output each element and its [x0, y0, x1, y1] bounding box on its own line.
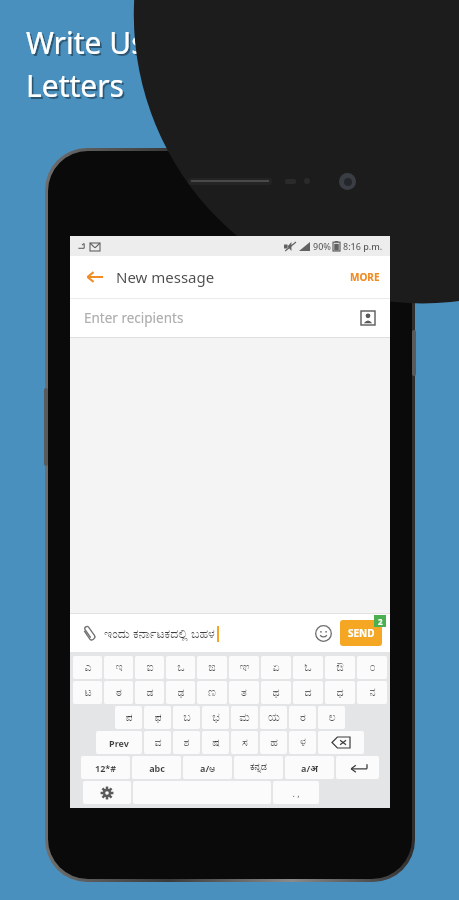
- button[interactable]: ಮ: [231, 706, 258, 729]
- staticText: ಬ: [183, 712, 191, 723]
- button[interactable]: ಣ: [197, 681, 227, 704]
- staticText: ಔ: [336, 662, 344, 673]
- staticText: . ,: [292, 787, 300, 799]
- button[interactable]: . ,: [273, 781, 319, 804]
- button[interactable]: 12*#: [81, 756, 130, 779]
- staticText: ರ: [300, 712, 306, 723]
- staticText: ಒ: [177, 662, 185, 673]
- button[interactable]: ಕನ್ನಡ: [234, 756, 283, 779]
- staticText: Write Using Kannada: [26, 22, 323, 63]
- staticText: a/अ: [301, 762, 318, 774]
- button[interactable]: ಒ: [166, 656, 195, 679]
- button[interactable]: ಇ: [104, 656, 133, 679]
- staticText: ಳ: [300, 737, 306, 748]
- button[interactable]: a/अ: [285, 756, 334, 779]
- button[interactable]: ಥ: [261, 681, 291, 704]
- staticText: ನ: [369, 687, 376, 698]
- button[interactable]: Keyboard settings: [83, 781, 131, 804]
- button[interactable]: SEND: [340, 620, 382, 646]
- button[interactable]: ಢ: [166, 681, 195, 704]
- staticText: ಫ: [154, 712, 162, 723]
- button[interactable]: ೦: [357, 656, 387, 679]
- staticText: ಙ: [208, 662, 216, 673]
- staticText: ಟ: [84, 687, 92, 698]
- staticText: SEND: [348, 626, 375, 640]
- staticText: ಧ: [336, 687, 344, 698]
- button[interactable]: ಙ: [197, 656, 227, 679]
- button[interactable]: Backspace: [318, 731, 364, 754]
- button[interactable]: ಹ: [260, 731, 287, 754]
- staticText: abc: [149, 762, 165, 774]
- button[interactable]: ಠ: [104, 681, 133, 704]
- button[interactable]: ಎ: [73, 656, 102, 679]
- button[interactable]: ಡ: [135, 681, 164, 704]
- button[interactable]: ದ: [293, 681, 323, 704]
- button[interactable]: ಞ: [229, 656, 259, 679]
- button[interactable]: ಶ: [173, 731, 200, 754]
- button[interactable]: ಟ: [73, 681, 102, 704]
- staticText: 90%: [313, 240, 331, 252]
- button[interactable]: ನ: [357, 681, 387, 704]
- staticText: Letters: [26, 65, 124, 106]
- staticText: ಸ: [242, 737, 248, 748]
- staticText: ಠ: [116, 687, 122, 698]
- staticText: ಎ: [84, 662, 92, 673]
- button[interactable]: ಓ: [293, 656, 323, 679]
- button[interactable]: ಲ: [318, 706, 345, 729]
- button[interactable]: Back: [80, 262, 110, 292]
- staticText: ತ: [241, 687, 247, 698]
- button[interactable]: abc: [132, 756, 181, 779]
- button[interactable]: ಪ: [115, 706, 142, 729]
- staticText: ಞ: [239, 662, 250, 673]
- staticText: ಕನ್ನಡ: [250, 763, 267, 772]
- button[interactable]: Enter recipients: [70, 299, 390, 337]
- staticText: ಢ: [177, 687, 185, 698]
- staticText: 12*#: [95, 762, 116, 774]
- button[interactable]: ಏ: [261, 656, 291, 679]
- staticText: Enter recipients: [84, 309, 184, 327]
- button[interactable]: ಫ: [144, 706, 171, 729]
- button[interactable]: ಳ: [289, 731, 316, 754]
- staticText: ಡ: [146, 687, 154, 698]
- staticText: ಷ: [212, 737, 220, 748]
- button[interactable]: ಬ: [173, 706, 200, 729]
- staticText: New message: [116, 267, 215, 287]
- button[interactable]: ಯ: [260, 706, 287, 729]
- staticText: 2: [378, 616, 383, 627]
- staticText: Write Using Kannada: [28, 24, 325, 65]
- button[interactable]: MORE: [340, 264, 390, 290]
- staticText: a/ಅ: [200, 762, 215, 774]
- staticText: ಇ: [115, 662, 123, 673]
- staticText: ಇಂದು ಕರ್ನಾಟಕದಲ್ಲಿ ಬಹಳ: [104, 625, 215, 642]
- button[interactable]: ಷ: [202, 731, 229, 754]
- button[interactable]: Attach: [77, 621, 101, 645]
- button[interactable]: Emoji: [310, 620, 336, 646]
- staticText: ಯ: [268, 712, 280, 723]
- staticText: ಣ: [208, 687, 216, 698]
- button[interactable]: ಔ: [325, 656, 355, 679]
- button[interactable]: Enter: [336, 756, 379, 779]
- staticText: ಹ: [270, 737, 278, 748]
- button[interactable]: Add contact: [358, 308, 378, 328]
- button[interactable]: ಧ: [325, 681, 355, 704]
- button[interactable]: ತ: [229, 681, 259, 704]
- button[interactable]: ಐ: [135, 656, 164, 679]
- button[interactable]: ರ: [289, 706, 316, 729]
- staticText: ಏ: [272, 662, 280, 673]
- staticText: MORE: [350, 270, 380, 284]
- staticText: Letters: [28, 67, 126, 108]
- staticText: ಭ: [212, 712, 220, 723]
- staticText: ಓ: [304, 662, 312, 673]
- staticText: ಪ: [125, 712, 133, 723]
- button[interactable]: ಭ: [202, 706, 229, 729]
- button[interactable]: ವ: [144, 731, 171, 754]
- button[interactable]: Prev: [96, 731, 142, 754]
- staticText: ಐ: [146, 662, 154, 673]
- staticText: ದ: [304, 687, 312, 698]
- staticText: ಥ: [272, 687, 280, 698]
- staticText: ಲ: [328, 712, 336, 723]
- button[interactable]: ಸ: [231, 731, 258, 754]
- button[interactable]: a/ಅ: [183, 756, 232, 779]
- staticText: Prev: [109, 737, 129, 749]
